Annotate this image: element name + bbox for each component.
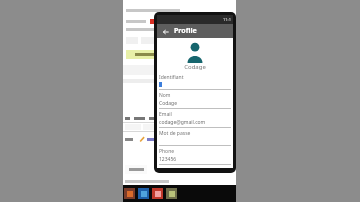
staticText: Email bbox=[159, 111, 172, 118]
button[interactable]: Email bbox=[159, 111, 231, 130]
button[interactable]: Identifiant bbox=[159, 74, 231, 92]
staticText: Profile bbox=[174, 26, 197, 36]
button[interactable]: Back bbox=[161, 27, 170, 36]
button[interactable]: Mot de passe bbox=[159, 130, 231, 148]
button[interactable]: Phone bbox=[159, 148, 231, 167]
staticText: codage@gmail.com bbox=[159, 119, 206, 126]
staticText: 11:1 bbox=[223, 17, 231, 22]
staticText: Identifiant bbox=[159, 74, 184, 81]
staticText: Phone bbox=[159, 148, 175, 155]
staticText: Codage bbox=[159, 100, 177, 107]
staticText: Nom bbox=[159, 92, 171, 99]
button[interactable] bbox=[141, 37, 167, 44]
button[interactable] bbox=[125, 165, 147, 174]
button[interactable] bbox=[124, 188, 135, 199]
button[interactable] bbox=[138, 188, 149, 199]
button[interactable] bbox=[166, 188, 177, 199]
button[interactable] bbox=[152, 188, 163, 199]
staticText: Codage bbox=[157, 63, 233, 71]
staticText: Mot de passe bbox=[159, 130, 191, 137]
staticText: 123456 bbox=[159, 156, 177, 163]
button[interactable]: Nom bbox=[159, 92, 231, 111]
